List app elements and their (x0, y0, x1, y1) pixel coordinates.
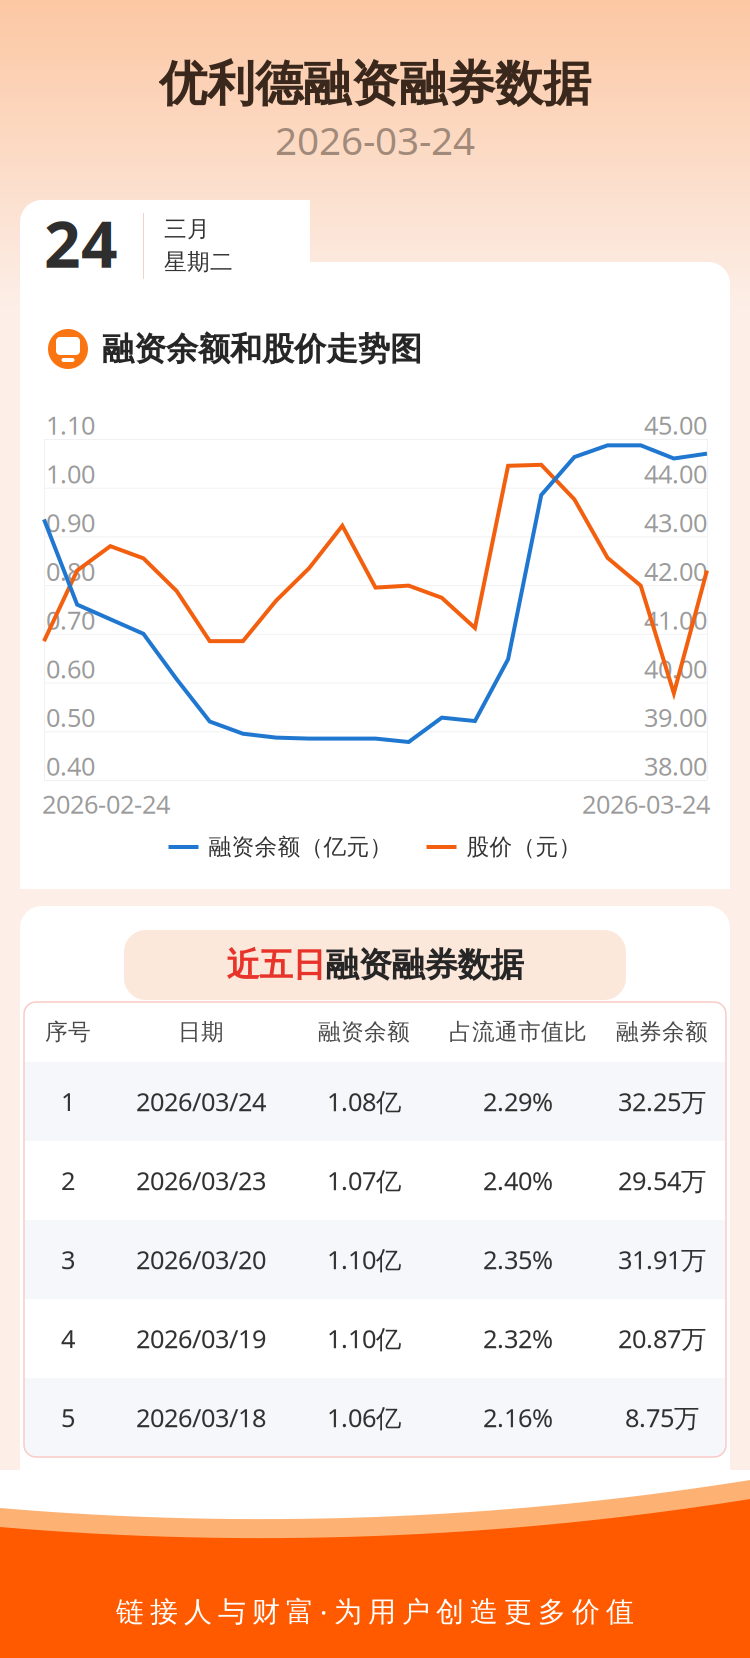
staticText: 1.08亿 (327, 1085, 401, 1118)
staticText: 2.40% (483, 1164, 553, 1197)
staticText: 43.00 (644, 506, 707, 539)
staticText: 优利德融资融券数据 (159, 54, 591, 113)
staticText: 占流通市值比 (449, 1018, 587, 1046)
staticText: 融券余额 (616, 1018, 708, 1046)
staticText: · (320, 1593, 328, 1631)
staticText: 星期二 (164, 248, 233, 276)
staticText: 5 (61, 1401, 75, 1434)
staticText: 38.00 (644, 749, 707, 783)
staticText: 融资融券数据 (325, 944, 523, 985)
staticText: 3 (61, 1243, 75, 1276)
staticText: 20.87万 (618, 1322, 706, 1355)
staticText: 0.90 (46, 506, 95, 539)
staticText: 1.07亿 (327, 1164, 401, 1197)
staticText: 1.00 (46, 457, 95, 490)
staticText: 融资余额（亿元） (208, 833, 392, 861)
staticText: 值 (606, 1595, 634, 1629)
staticText: 24 (44, 200, 118, 285)
staticText: 财 (252, 1595, 280, 1629)
staticText: 2026-03-24 (582, 787, 710, 821)
staticText: 2026/03/20 (136, 1243, 266, 1276)
staticText: 41.00 (644, 603, 707, 637)
staticText: 融资余额 (318, 1018, 410, 1046)
staticText: 44.00 (644, 457, 707, 490)
staticText: 更 (504, 1595, 532, 1629)
staticText: 链 (116, 1595, 144, 1629)
staticText: 31.91万 (618, 1243, 706, 1276)
staticText: 1.10亿 (327, 1322, 401, 1355)
staticText: 日期 (178, 1018, 224, 1046)
staticText: 2026/03/24 (136, 1085, 266, 1118)
staticText: 股价（元） (466, 833, 581, 861)
staticText: 2026-02-24 (42, 787, 170, 821)
staticText: 4 (61, 1322, 75, 1355)
staticText: 0.70 (46, 603, 95, 637)
staticText: 造 (470, 1595, 498, 1629)
staticText: 1.10亿 (327, 1243, 401, 1276)
staticText: 人 (184, 1595, 212, 1629)
staticText: 近五日 (226, 944, 325, 985)
staticText: 序号 (45, 1018, 91, 1046)
staticText: 2.29% (483, 1085, 553, 1118)
staticText: 8.75万 (625, 1401, 699, 1434)
staticText: 接 (150, 1595, 178, 1629)
staticText: 2.32% (483, 1322, 553, 1355)
staticText: 三月 (164, 215, 210, 243)
staticText: 0.50 (46, 700, 95, 734)
staticText: 40.00 (644, 652, 707, 685)
staticText: 0.60 (46, 652, 95, 685)
staticText: 2.35% (483, 1243, 553, 1276)
staticText: 多 (538, 1595, 566, 1629)
staticText: 1.10 (46, 408, 95, 442)
staticText: 0.40 (46, 749, 95, 783)
staticText: 39.00 (644, 700, 707, 734)
staticText: 2026/03/19 (136, 1322, 266, 1355)
staticText: 0.80 (46, 554, 95, 588)
staticText: 2026/03/23 (136, 1164, 266, 1197)
staticText: 富 (286, 1595, 314, 1629)
staticText: 29.54万 (618, 1164, 706, 1197)
staticText: 为 (334, 1595, 362, 1629)
staticText: 2026/03/18 (136, 1401, 266, 1434)
staticText: 2.16% (483, 1401, 553, 1434)
staticText: 2026-03-24 (275, 114, 475, 166)
staticText: 与 (218, 1595, 246, 1629)
staticText: 户 (402, 1595, 430, 1629)
staticText: 用 (368, 1595, 396, 1629)
staticText: 融资余额和股价走势图 (102, 329, 422, 369)
staticText: 45.00 (644, 408, 707, 442)
staticText: 2 (61, 1164, 75, 1197)
staticText: 1.06亿 (327, 1401, 401, 1434)
staticText: 价 (572, 1595, 600, 1629)
staticText: 创 (436, 1595, 464, 1629)
staticText: 42.00 (644, 554, 707, 588)
staticText: 32.25万 (618, 1085, 706, 1118)
staticText: 1 (61, 1085, 75, 1118)
